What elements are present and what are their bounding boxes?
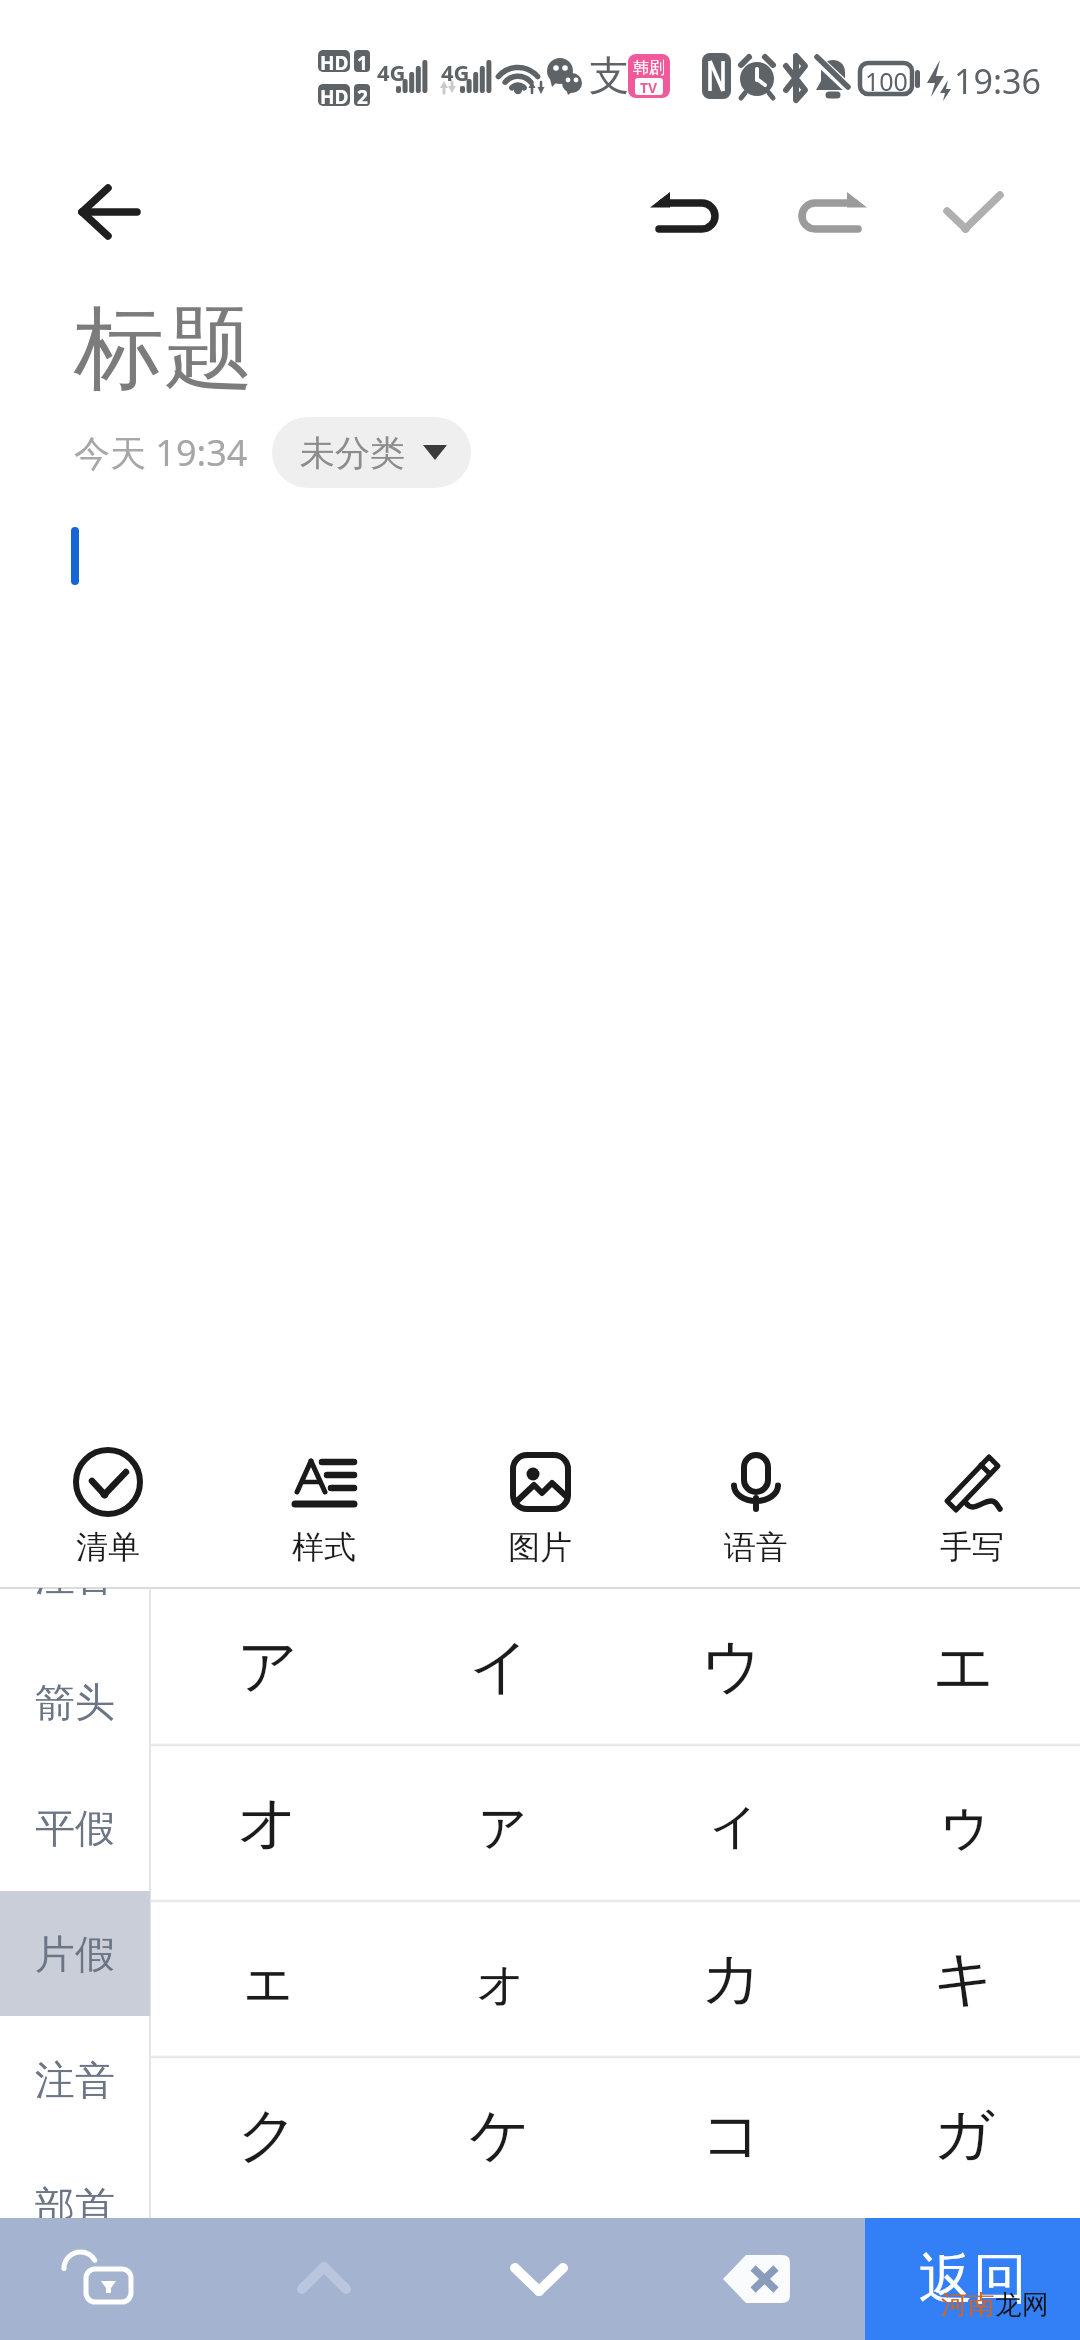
staticText: 手写: [940, 1527, 1004, 1567]
staticText: オ: [237, 1785, 299, 1861]
staticText: 1: [357, 50, 368, 72]
staticText: 清单: [76, 1527, 140, 1567]
staticText: 河南: [941, 2288, 995, 2322]
button[interactable]: キ: [848, 1901, 1080, 2057]
staticText: ィ: [701, 1785, 763, 1861]
button[interactable]: コ: [616, 2057, 848, 2213]
staticText: 返回: [919, 2245, 1027, 2313]
button[interactable]: 未分类: [272, 417, 471, 488]
button[interactable]: ェ: [152, 1901, 384, 2057]
staticText: 平假: [35, 1803, 115, 1853]
staticText: キ: [933, 1941, 995, 2017]
staticText: 19:36: [954, 58, 1041, 104]
button[interactable]: ウ: [616, 1588, 848, 1745]
button[interactable]: 箭头: [0, 1640, 150, 1764]
staticText: エ: [933, 1629, 995, 1705]
button[interactable]: カ: [616, 1901, 848, 2057]
staticText: 4G: [377, 57, 406, 87]
staticText: 2: [357, 84, 368, 106]
staticText: カ: [701, 1941, 763, 2017]
staticText: 4G: [441, 57, 470, 87]
button[interactable]: 图片: [432, 1424, 648, 1588]
staticText: HD: [320, 84, 349, 106]
staticText: ウ: [701, 1629, 763, 1705]
button[interactable]: 清单: [0, 1424, 216, 1588]
button[interactable]: 平假: [0, 1766, 150, 1890]
button[interactable]: 注音: [0, 2018, 150, 2142]
button[interactable]: 片假: [0, 1892, 150, 2016]
button[interactable]: 语音: [648, 1424, 864, 1588]
staticText: 标题: [74, 292, 254, 405]
button[interactable]: オ: [152, 1745, 384, 1901]
staticText: 龙网: [995, 2288, 1049, 2322]
button[interactable]: ク: [152, 2057, 384, 2213]
button[interactable]: ア: [152, 1588, 384, 1745]
staticText: ァ: [469, 1785, 531, 1861]
staticText: ケ: [469, 2097, 531, 2173]
staticText: ガ: [933, 2097, 995, 2173]
button[interactable]: Done: [918, 160, 1028, 264]
staticText: 未分类: [300, 431, 405, 475]
button[interactable]: Undo: [628, 160, 738, 264]
staticText: コ: [701, 2097, 763, 2173]
staticText: 片假: [35, 1929, 115, 1979]
staticText: ゥ: [933, 1785, 995, 1861]
button[interactable]: エ: [848, 1588, 1080, 1745]
staticText: 部首: [35, 2181, 115, 2218]
button[interactable]: ァ: [384, 1745, 616, 1901]
button[interactable]: 返回: [865, 2218, 1080, 2340]
staticText: 注音: [35, 2055, 115, 2105]
staticText: ア: [237, 1629, 299, 1705]
button[interactable]: Back: [48, 160, 158, 264]
button[interactable]: ガ: [848, 2057, 1080, 2213]
staticText: TV: [640, 78, 658, 95]
staticText: ェ: [237, 1941, 299, 2017]
staticText: 箭头: [35, 1677, 115, 1727]
button[interactable]: Page down: [479, 2218, 599, 2340]
staticText: 样式: [292, 1527, 356, 1567]
button[interactable]: 样式: [216, 1424, 432, 1588]
button[interactable]: イ: [384, 1588, 616, 1745]
staticText: ク: [237, 2097, 299, 2173]
staticText: 语音: [724, 1527, 788, 1567]
button[interactable]: 手写: [864, 1424, 1080, 1588]
button[interactable]: ィ: [616, 1745, 848, 1901]
button[interactable]: ケ: [384, 2057, 616, 2213]
button[interactable]: 部首: [0, 2144, 150, 2218]
staticText: HD: [320, 50, 349, 72]
staticText: 韩剧: [633, 58, 665, 78]
button[interactable]: 注音: [0, 1588, 150, 1638]
button[interactable]: Redo: [781, 160, 891, 264]
staticText: 今天 19:34: [74, 428, 248, 477]
staticText: 图片: [508, 1527, 572, 1567]
button[interactable]: Backspace: [696, 2218, 816, 2340]
button[interactable]: ゥ: [848, 1745, 1080, 1901]
staticText: 注音: [35, 1588, 115, 1601]
button[interactable]: Shift lock: [38, 2218, 158, 2340]
staticText: イ: [469, 1629, 531, 1705]
staticText: ォ: [469, 1941, 531, 2017]
staticText: 100: [865, 64, 908, 93]
button[interactable]: ォ: [384, 1901, 616, 2057]
button[interactable]: Page up: [264, 2218, 384, 2340]
staticText: 支: [589, 50, 629, 100]
